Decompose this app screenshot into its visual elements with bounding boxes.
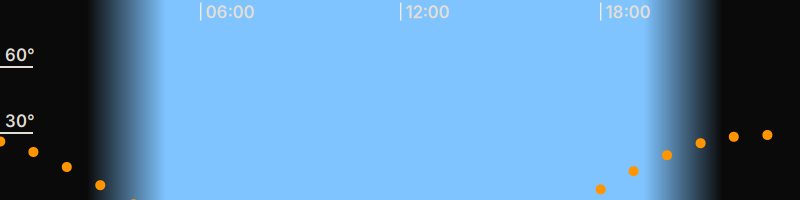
staticText: 30° [5,111,35,131]
staticText: 12:00 [405,2,449,22]
staticText: 06:00 [205,2,254,22]
staticText: 18:00 [605,2,650,22]
staticText: 60° [5,45,35,65]
